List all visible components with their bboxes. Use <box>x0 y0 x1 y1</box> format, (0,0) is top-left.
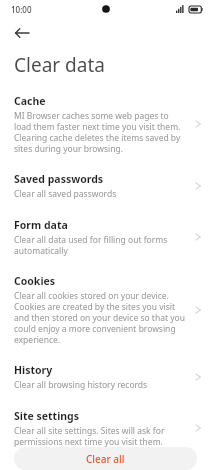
staticText: Cache <box>14 94 46 108</box>
staticText: History <box>14 363 53 377</box>
button[interactable]: Back <box>8 19 36 47</box>
button[interactable]: Saved passwords <box>0 172 211 200</box>
button[interactable]: Site settings <box>0 409 211 447</box>
button[interactable]: Cookies <box>0 274 211 345</box>
staticText: 10:00 <box>11 4 32 15</box>
staticText: Clear all data used for filling out form… <box>14 234 187 256</box>
button[interactable]: History <box>0 363 211 391</box>
button[interactable]: Clear all <box>14 447 197 470</box>
staticText: Clear all site settings. Sites will ask … <box>14 425 187 447</box>
staticText: Form data <box>14 218 68 232</box>
staticText: Saved passwords <box>14 172 104 186</box>
staticText: Site settings <box>14 409 80 423</box>
button[interactable]: Cache <box>0 94 211 154</box>
staticText: Clear data <box>14 52 105 78</box>
staticText: Clear all cookies stored on your device.… <box>14 290 187 345</box>
staticText: Clear all <box>86 452 125 466</box>
staticText: MI Browser caches some web pages to load… <box>14 110 187 154</box>
staticText: Clear all browsing history records <box>14 379 148 391</box>
staticText: Cookies <box>14 274 56 288</box>
button[interactable]: Form data <box>0 218 211 256</box>
staticText: Clear all saved passwords <box>14 188 117 200</box>
